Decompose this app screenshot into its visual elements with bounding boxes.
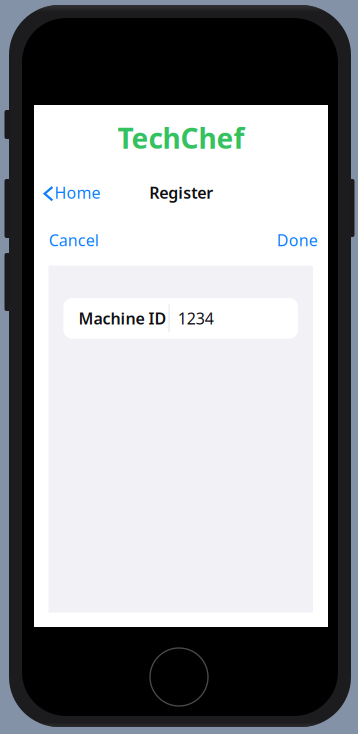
button[interactable]: Cancel	[47, 226, 103, 248]
staticText: 1234	[178, 308, 214, 329]
staticText: Register	[149, 182, 213, 203]
staticText: Home	[55, 182, 101, 203]
button[interactable]: Machine ID	[63, 298, 298, 339]
button[interactable]: Done	[275, 226, 319, 248]
staticText: TechChef	[117, 119, 244, 157]
button[interactable]: Home	[42, 182, 114, 204]
staticText: Cancel	[49, 229, 99, 251]
staticText: Done	[277, 229, 318, 251]
staticText: Machine ID	[78, 308, 166, 329]
